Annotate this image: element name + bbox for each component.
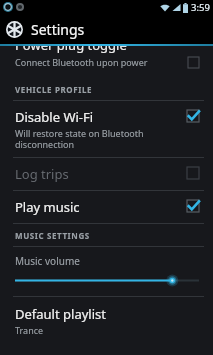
staticText: Play music	[15, 198, 80, 216]
staticText: Will restore state on Bluetooth disconne…	[15, 127, 144, 150]
staticText: Settings	[31, 20, 85, 39]
button[interactable]: Default playlist	[0, 297, 213, 344]
staticText: VEHICLE PROFILE	[15, 84, 93, 95]
staticText: Disable Wi-Fi	[15, 108, 94, 126]
staticText: MUSIC SETTINGS	[15, 230, 90, 241]
button[interactable]: Disable Wi-Fi	[0, 101, 213, 157]
button[interactable]: Log trips	[0, 158, 213, 190]
button[interactable]: Power plug toggle	[0, 46, 213, 78]
button[interactable]: Play music	[0, 191, 213, 223]
staticText: 3:59	[191, 1, 210, 14]
button[interactable]: Music volume	[0, 247, 213, 296]
staticText: Log trips	[15, 165, 69, 183]
staticText: Music volume	[15, 254, 80, 268]
staticText: Connect Bluetooth upon power plug	[15, 56, 188, 68]
button[interactable]: Settings, up	[0, 14, 213, 44]
staticText: Power plug toggle	[15, 46, 127, 54]
staticText: Trance	[15, 324, 44, 336]
staticText: Default playlist	[15, 305, 106, 323]
